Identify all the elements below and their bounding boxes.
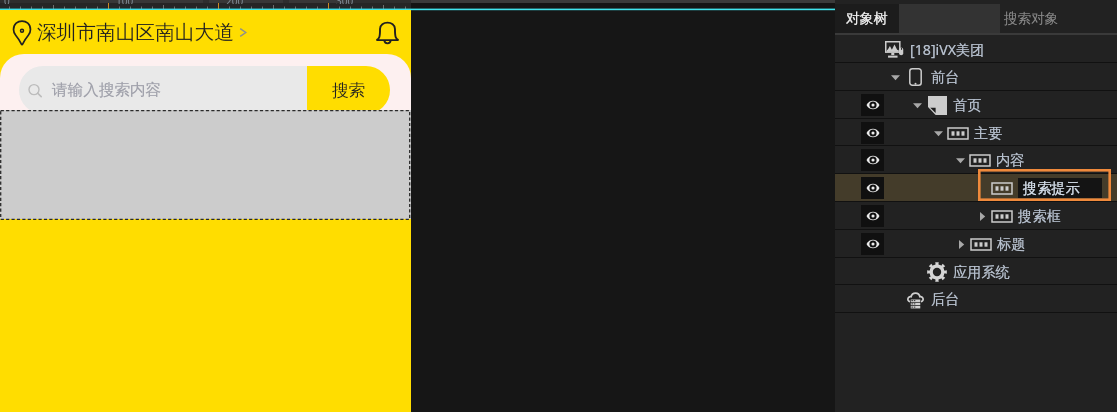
staticText: 首页 [953,96,982,114]
staticText: 后台 [931,290,960,308]
staticText: 搜索框 [1018,207,1061,225]
staticText: 主要 [974,124,1003,142]
button[interactable]: 标题 [835,230,1117,258]
button[interactable]: 应用系统 [835,258,1117,285]
staticText: 300 [336,0,354,4]
button[interactable]: 首页 [835,91,1117,119]
button[interactable]: Location [13,20,31,46]
staticText: 请输入搜索内容 [52,80,162,100]
staticText: 100 [116,0,134,4]
staticText: 前台 [931,68,960,86]
button[interactable]: 内容 [835,146,1117,174]
staticText: 深圳市南山区南山大道 [37,20,234,45]
button[interactable]: 主要 [835,119,1117,146]
staticText: [18]iVX美团 [910,40,985,59]
button[interactable]: 请输入搜索内容 [19,66,307,110]
button[interactable]: 搜索对象 [1004,4,1117,33]
button[interactable]: Notifications [376,19,399,44]
staticText: 应用系统 [953,263,1010,281]
staticText: 0 [4,0,10,4]
button[interactable]: 搜索框 [835,202,1117,230]
button[interactable]: 前台 [835,63,1117,91]
staticText: 对象树 [846,10,888,27]
button[interactable]: 搜索 [307,66,390,110]
button[interactable]: 对象树 [835,4,899,33]
staticText: 内容 [996,151,1025,169]
button[interactable]: [18]iVX美团 [835,35,1117,63]
staticText: 搜索对象 [1004,10,1059,27]
button[interactable]: 搜索提示 [835,174,1117,202]
staticText: 搜索提示 [1023,179,1080,197]
button[interactable]: 后台 [835,285,1117,313]
staticText: 标题 [997,235,1026,253]
staticText: 200 [226,0,244,4]
staticText: 搜索 [332,80,366,101]
